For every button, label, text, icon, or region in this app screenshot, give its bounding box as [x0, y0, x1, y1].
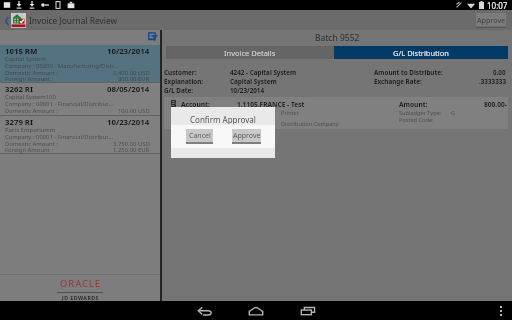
staticText: 800.00 EUR — [118, 75, 150, 83]
staticText: Foreign Amount : — [5, 75, 53, 83]
button[interactable]: Recent apps — [289, 301, 327, 320]
staticText: 1015 RM — [5, 46, 38, 57]
staticText: 4242 - Capital System — [230, 68, 297, 77]
staticText: 0.00 — [493, 68, 506, 77]
staticText: 10/23/2014 — [230, 86, 265, 95]
staticText: Company : 00200 - Manufacturing/Distr... — [5, 62, 119, 70]
button[interactable]: 1015 RM — [0, 45, 160, 83]
button[interactable]: Back — [186, 301, 224, 320]
staticText: Batch 9552 — [315, 32, 360, 44]
staticText: Capital System — [5, 55, 46, 63]
button[interactable]: 3262 RI — [0, 83, 160, 116]
button[interactable]: Invoice Details — [166, 46, 334, 59]
staticText: Exchange Rate: — [374, 77, 422, 86]
button[interactable]: Home — [237, 301, 275, 320]
button[interactable]: G/L Distribution — [334, 46, 508, 59]
staticText: Customer: — [164, 68, 197, 77]
button[interactable]: Filter — [148, 32, 158, 42]
staticText: Distribution Company — [281, 120, 339, 128]
staticText: 100.00 USD — [118, 107, 150, 115]
staticText: Explanation: — [164, 77, 204, 86]
staticText: Foreign Amount : — [5, 146, 53, 154]
staticText: Subledger Type: — [399, 109, 442, 117]
staticText: 08/05/2014 — [107, 84, 150, 95]
staticText: JD EDWARDS — [62, 294, 99, 301]
button[interactable]: Approve — [476, 13, 506, 28]
staticText: .3333333 — [479, 77, 506, 86]
staticText: 10/23/2014 — [107, 46, 150, 57]
staticText: 10/23/2014 — [107, 117, 150, 128]
staticText: Capital System — [230, 77, 277, 86]
button[interactable]: Approve — [232, 129, 261, 144]
staticText: Approve — [477, 15, 506, 25]
button[interactable]: 3279 RI — [0, 116, 160, 154]
button[interactable]: Cancel — [186, 129, 213, 144]
button[interactable]: Navigate up — [2, 11, 11, 30]
staticText: Approve — [233, 131, 261, 141]
staticText: G/L Date: — [164, 86, 193, 95]
staticText: Invoice Journal Review — [29, 15, 118, 26]
staticText: Confirm Approval — [190, 114, 256, 124]
staticText: Parts Emporiumm — [5, 126, 56, 134]
staticText: 10:07 — [487, 0, 508, 10]
staticText: Company : 00001 - Financial/Distribut... — [5, 133, 114, 141]
staticText: 1,250.00 EUR — [113, 146, 150, 154]
staticText: Amount: — [399, 100, 428, 109]
staticText: Capital System100 — [5, 93, 56, 101]
staticText: Posted Code: — [399, 116, 434, 124]
staticText: 3262 RI — [5, 84, 34, 95]
staticText: Printer — [281, 109, 300, 117]
staticText: Account: — [181, 100, 210, 109]
staticText: 2,400.00 USD — [113, 69, 150, 77]
staticText: Domestic Amount : — [5, 140, 58, 148]
button[interactable]: More options — [490, 301, 512, 320]
staticText: 3279 RI — [5, 117, 34, 128]
staticText: Company : 00001 - Financial/Distribut... — [5, 100, 114, 108]
staticText: 3,750.00 USD — [113, 140, 150, 148]
staticText: Invoice Details — [224, 48, 276, 58]
staticText: ORACLE — [60, 277, 101, 290]
staticText: Cancel — [189, 131, 211, 141]
staticText: G/L Distribution — [393, 48, 449, 58]
staticText: Domestic Amount : — [5, 69, 58, 77]
staticText: 1.1105.FRANCE - Test — [237, 100, 305, 109]
button[interactable]: Account: — [164, 97, 508, 129]
staticText: Amount to Distribute: — [374, 68, 443, 77]
staticText: G — [451, 109, 456, 117]
staticText: 800.00- — [484, 100, 507, 109]
staticText: Domestic Amount : — [5, 107, 58, 115]
